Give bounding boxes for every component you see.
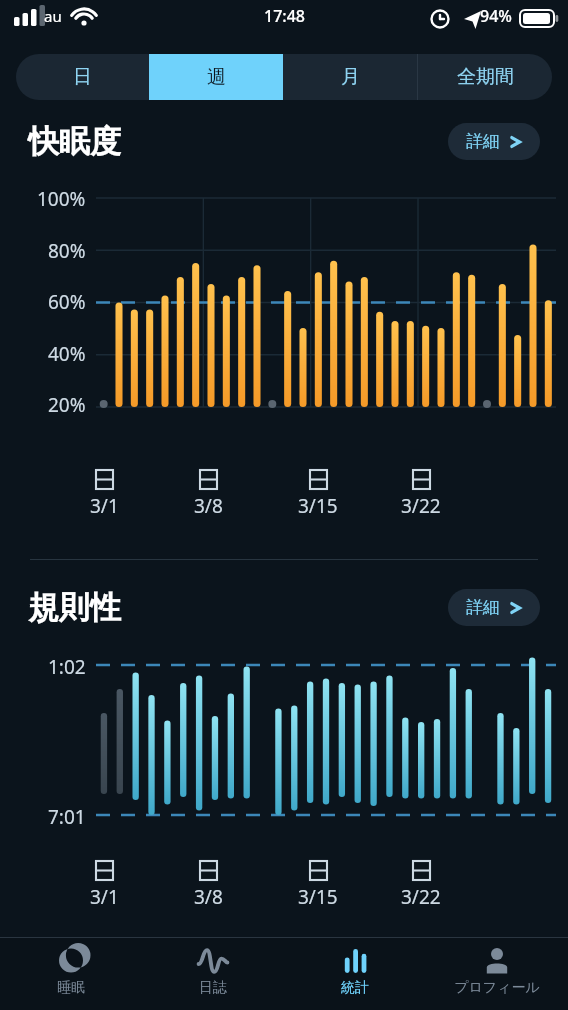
staticText: 日誌 [199, 979, 227, 997]
staticText: 17:48 [264, 5, 305, 27]
button[interactable]: 統計 [284, 938, 426, 1010]
staticText: 100% [37, 186, 86, 212]
staticText: プロフィール [454, 979, 540, 997]
staticText: 40% [48, 341, 86, 367]
staticText: 統計 [341, 979, 369, 997]
staticText: 20% [48, 392, 86, 418]
staticText: au [44, 6, 62, 26]
staticText: 詳細 [466, 597, 500, 618]
staticText: 3/8 [194, 493, 223, 519]
staticText: 7:01 [48, 804, 86, 830]
staticText: 3/22 [401, 884, 441, 910]
button[interactable]: 詳細 [448, 123, 540, 160]
staticText: 94% [480, 5, 512, 27]
staticText: 80% [48, 238, 86, 264]
button[interactable]: プロフィール [426, 938, 568, 1010]
staticText: 快眠度 [28, 122, 121, 161]
button[interactable]: 週 [149, 54, 283, 100]
staticText: 睡眠 [57, 979, 85, 997]
staticText: 3/1 [90, 884, 119, 910]
staticText: 日 [73, 65, 92, 89]
staticText: 1:02 [48, 654, 86, 680]
staticText: 3/22 [401, 493, 441, 519]
button[interactable]: 日誌 [142, 938, 284, 1010]
staticText: 3/1 [90, 493, 119, 519]
staticText: 3/8 [194, 884, 223, 910]
staticText: 3/15 [298, 884, 338, 910]
staticText: 規則性 [28, 588, 121, 627]
button[interactable]: 月 [283, 54, 417, 100]
staticText: 3/15 [298, 493, 338, 519]
button[interactable]: 睡眠 [0, 938, 142, 1010]
button[interactable]: 詳細 [448, 589, 540, 626]
staticText: 月 [341, 65, 360, 89]
staticText: 週 [207, 65, 226, 89]
staticText: 詳細 [466, 131, 500, 152]
button[interactable]: 日 [16, 54, 149, 100]
staticText: 60% [48, 289, 86, 315]
button[interactable]: 全期間 [418, 54, 552, 100]
staticText: 全期間 [457, 65, 514, 89]
